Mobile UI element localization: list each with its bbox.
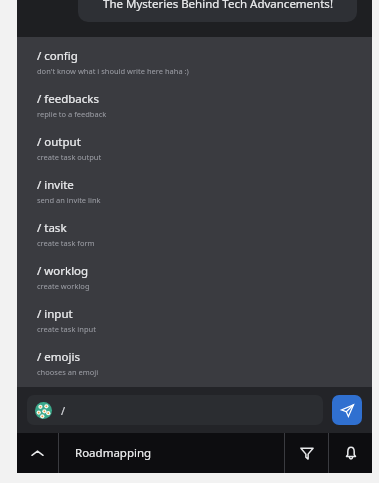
staticText: /: [61, 403, 66, 418]
button[interactable]: / feedbacks: [17, 91, 372, 134]
button[interactable]: Expand: [17, 433, 58, 473]
staticText: / feedbacks: [37, 91, 99, 107]
button[interactable]: /: [27, 395, 323, 425]
staticText: / invite: [37, 177, 74, 193]
staticText: / task: [37, 220, 67, 236]
button[interactable]: / input: [17, 306, 372, 349]
staticText: / output: [37, 134, 81, 150]
staticText: create worklog: [37, 281, 90, 291]
button[interactable]: / config: [17, 48, 372, 91]
button[interactable]: The Mysteries Behind Tech Advancements!: [78, 0, 357, 22]
staticText: send an invite link: [37, 195, 101, 205]
button[interactable]: Filter: [285, 433, 328, 473]
staticText: / config: [37, 48, 78, 64]
staticText: replie to a feedback: [37, 109, 107, 119]
staticText: chooses an emoji: [37, 367, 99, 377]
staticText: / input: [37, 306, 73, 322]
staticText: don't know what i should write here haha…: [37, 66, 189, 76]
staticText: create task output: [37, 152, 102, 162]
staticText: / emojis: [37, 349, 80, 365]
staticText: create task form: [37, 238, 95, 248]
button[interactable]: / worklog: [17, 263, 372, 306]
button[interactable]: / output: [17, 134, 372, 177]
staticText: create task input: [37, 324, 96, 334]
staticText: The Mysteries Behind Tech Advancements!: [103, 0, 333, 12]
button[interactable]: / task: [17, 220, 372, 263]
button[interactable]: / emojis: [17, 349, 372, 387]
button[interactable]: / invite: [17, 177, 372, 220]
staticText: / worklog: [37, 263, 89, 279]
button[interactable]: Notifications: [329, 433, 372, 473]
button[interactable]: Send: [332, 395, 362, 425]
button[interactable]: Roadmapping: [59, 433, 284, 473]
staticText: Roadmapping: [75, 445, 152, 461]
